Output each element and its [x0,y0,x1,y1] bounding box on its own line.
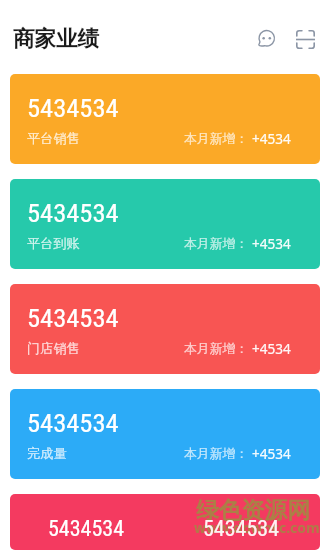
button[interactable]: 绿色资源网 [10,494,320,550]
staticText: 5434534 [27,302,119,333]
staticText: 完成量 [27,445,67,462]
staticText: 绿色资源网 [196,496,310,525]
staticText: +4534 [252,445,291,463]
staticText: 本月新增： [184,236,248,252]
staticText: +4534 [252,130,291,148]
staticText: +4534 [252,340,291,358]
staticText: +4534 [252,235,291,253]
staticText: 商家业绩 [13,25,99,52]
staticText: www.downcc.com [194,518,320,537]
button[interactable]: 5434534 [10,284,320,374]
staticText: 平台销售 [27,130,80,147]
staticText: 本月新增： [184,446,248,462]
staticText: 门店销售 [27,340,80,357]
staticText: 本月新增： [184,131,248,147]
button[interactable]: 5434534 [10,179,320,269]
button[interactable]: Messages [248,22,282,56]
button[interactable]: 5434534 [10,74,320,164]
staticText: 平台到账 [27,235,80,252]
staticText: 5434534 [27,92,119,123]
staticText: 5434534 [27,197,119,228]
button[interactable]: Scan [288,22,322,56]
staticText: 5434534 [27,407,119,438]
staticText: 5434534 [48,516,125,542]
button[interactable]: 5434534 [10,389,320,479]
staticText: 5434534 [203,516,280,542]
staticText: 本月新增： [184,341,248,357]
